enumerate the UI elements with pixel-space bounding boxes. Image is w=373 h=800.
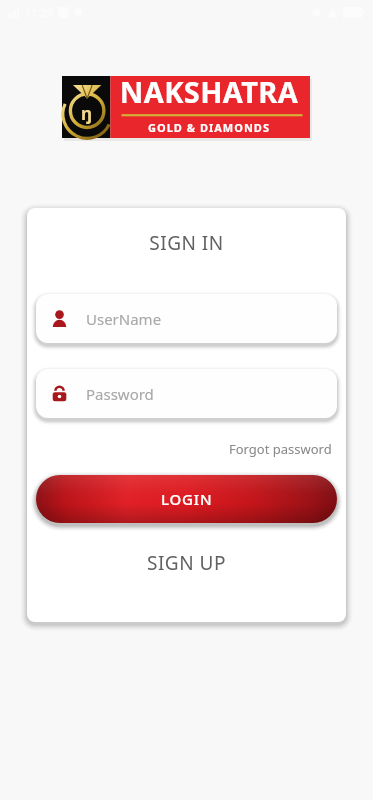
other: User name [51, 310, 68, 327]
staticText: LOGIN [161, 489, 213, 509]
button[interactable]: Password [36, 369, 337, 418]
staticText: GOLD & DIAMONDS [114, 120, 304, 135]
button[interactable]: User name [36, 294, 337, 343]
staticText: SIGN UP [147, 550, 226, 576]
staticText: UserName [86, 309, 162, 329]
other: Password [51, 385, 68, 402]
staticText: NAKSHATRA [114, 72, 304, 111]
button[interactable]: Forgot password [225, 437, 336, 461]
staticText: ŋ [81, 102, 93, 125]
staticText: Password [86, 384, 154, 404]
staticText: SIGN IN [27, 230, 346, 256]
button[interactable]: LOGIN [36, 475, 337, 523]
staticText: Forgot password [229, 440, 332, 458]
button[interactable]: SIGN UP [135, 545, 238, 581]
